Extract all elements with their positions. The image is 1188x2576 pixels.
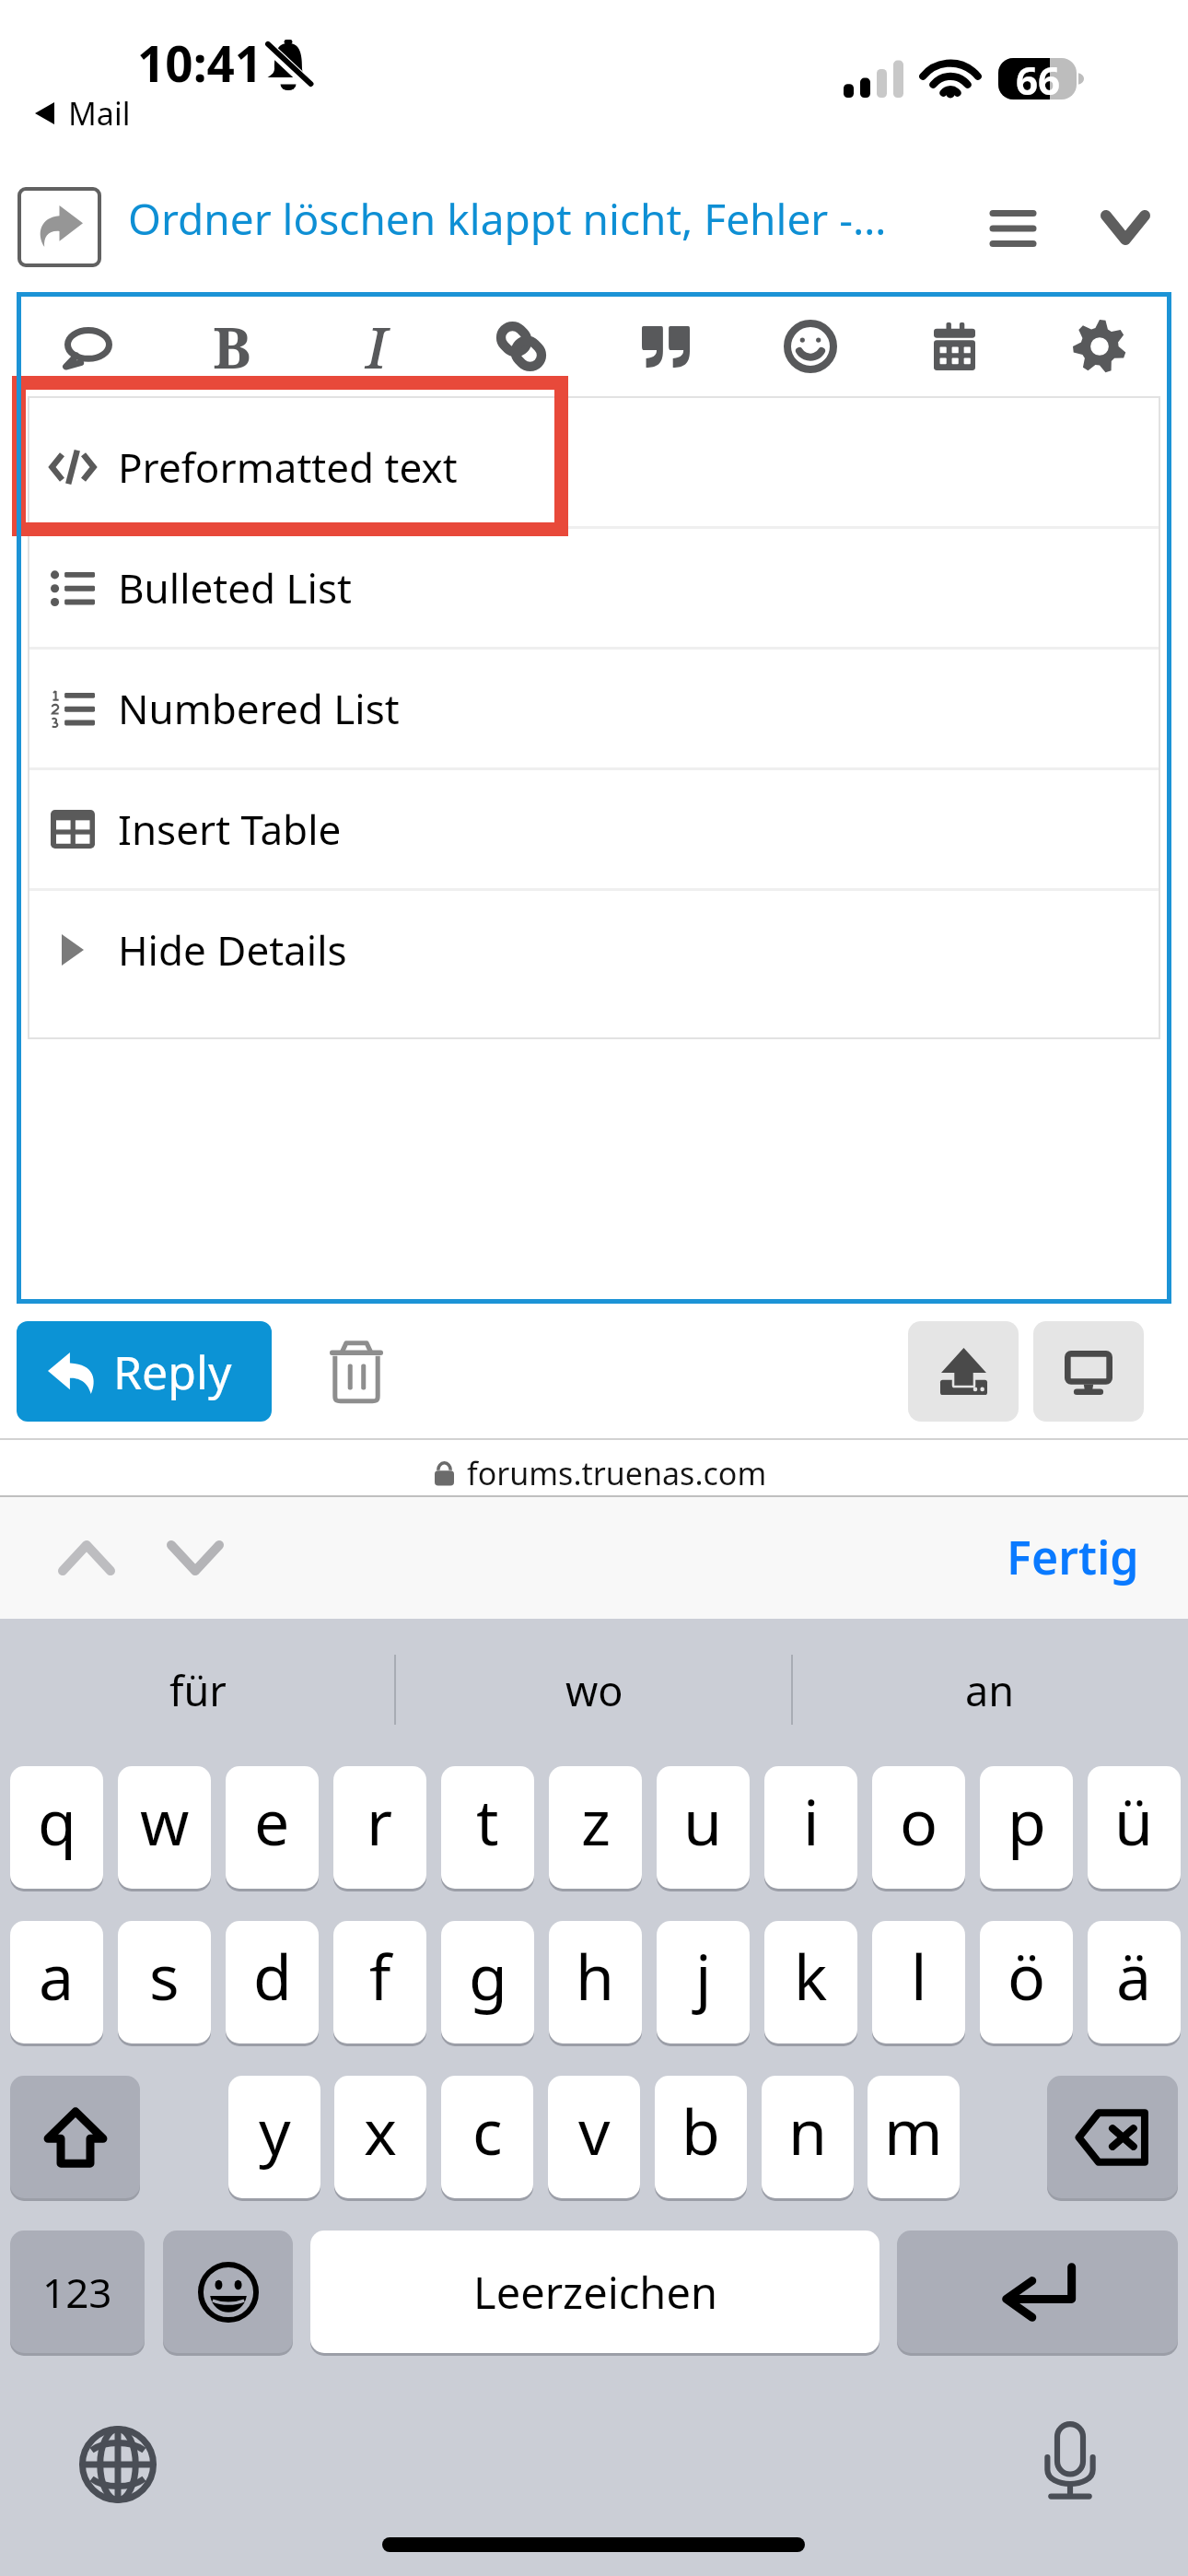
button[interactable]: c (441, 2076, 533, 2198)
button[interactable]: quote (593, 297, 738, 396)
button[interactable]: n (762, 2076, 854, 2198)
staticText: 10:41 (137, 29, 263, 96)
button[interactable]: f (333, 1921, 426, 2043)
staticText: Insert Table (118, 802, 342, 857)
button[interactable]: h (549, 1921, 642, 2043)
staticText: I (366, 308, 388, 385)
staticText: i (803, 1778, 820, 1864)
button[interactable]: Menu (971, 186, 1055, 271)
button[interactable]: Insert Table (28, 770, 1160, 888)
button[interactable]: forums.truenas.com (435, 1452, 767, 1494)
staticText: u (683, 1778, 723, 1864)
staticText: wo (565, 1662, 623, 1718)
staticText: e (254, 1778, 290, 1864)
button[interactable]: Bulleted List (28, 529, 1160, 647)
button[interactable]: b (655, 2076, 747, 2198)
button[interactable]: g (441, 1921, 534, 2043)
staticText: Leerzeichen (473, 2263, 717, 2322)
staticText: B (213, 308, 251, 385)
button[interactable]: Reply (17, 1321, 272, 1422)
staticText: m (884, 2088, 943, 2173)
staticText: k (794, 1933, 828, 2019)
button[interactable]: Next field (153, 1521, 238, 1595)
staticText: g (469, 1933, 507, 2019)
staticText: Preformatted text (118, 439, 458, 495)
staticText: 123 (42, 2265, 112, 2320)
button[interactable]: backspace (1047, 2076, 1178, 2198)
button[interactable]: emoji (163, 2231, 293, 2353)
button[interactable]: ü (1088, 1766, 1181, 1889)
button[interactable]: smiley (738, 297, 882, 396)
button[interactable]: Forward (17, 187, 101, 267)
button[interactable]: für (0, 1653, 396, 1727)
button[interactable]: i (764, 1766, 857, 1889)
button[interactable]: d (226, 1921, 319, 2043)
staticText: b (681, 2088, 720, 2173)
button[interactable]: calendar (882, 297, 1027, 396)
button[interactable]: e (226, 1766, 319, 1889)
staticText: n (788, 2088, 828, 2173)
staticText: p (1007, 1778, 1046, 1864)
button[interactable]: l (872, 1921, 965, 2043)
staticText: Mail (68, 92, 131, 135)
button[interactable]: Fertig (1007, 1516, 1139, 1598)
button[interactable]: shift (10, 2076, 140, 2198)
staticText: w (140, 1778, 190, 1864)
staticText: z (581, 1778, 611, 1864)
staticText: l (911, 1933, 927, 2019)
button[interactable]: j (657, 1921, 750, 2043)
staticText: r (367, 1778, 393, 1864)
button[interactable]: ö (980, 1921, 1073, 2043)
button[interactable]: Dictation (1024, 2414, 1116, 2506)
button[interactable]: Numbered List (28, 650, 1160, 767)
button[interactable]: Leerzeichen (310, 2231, 879, 2353)
button[interactable]: q (10, 1766, 103, 1889)
button[interactable]: Expand (1083, 185, 1168, 270)
button[interactable]: u (657, 1766, 750, 1889)
button[interactable]: Change keyboard (72, 2418, 164, 2511)
staticText: ü (1114, 1778, 1154, 1864)
button[interactable]: m (868, 2076, 960, 2198)
staticText: Hide Details (118, 922, 347, 978)
button[interactable]: bold (160, 297, 304, 396)
staticText: d (253, 1933, 292, 2019)
button[interactable]: Previous field (44, 1521, 129, 1595)
button[interactable]: k (764, 1921, 857, 2043)
button[interactable]: Preview (1033, 1321, 1144, 1422)
button[interactable]: s (118, 1921, 211, 2043)
staticText: Reply (113, 1341, 232, 1403)
button[interactable]: speech (17, 297, 160, 396)
staticText: Fertig (1007, 1526, 1139, 1588)
button[interactable]: link (448, 297, 593, 396)
staticText: h (576, 1933, 615, 2019)
button[interactable]: Hide Details (28, 891, 1160, 1009)
button[interactable]: v (548, 2076, 640, 2198)
button[interactable]: an (792, 1653, 1188, 1727)
staticText: c (472, 2088, 503, 2173)
button[interactable]: 123 (10, 2231, 145, 2353)
button[interactable]: t (441, 1766, 534, 1889)
button[interactable]: wo (396, 1653, 792, 1727)
button[interactable]: return (897, 2231, 1178, 2353)
button[interactable]: Mail (35, 92, 131, 135)
button[interactable]: y (228, 2076, 320, 2198)
button[interactable]: italic (304, 297, 448, 396)
staticText: 66 (1016, 53, 1061, 95)
button[interactable]: x (334, 2076, 426, 2198)
button[interactable]: z (549, 1766, 642, 1889)
staticText: j (695, 1933, 712, 2019)
button[interactable]: r (333, 1766, 426, 1889)
button[interactable]: ä (1088, 1921, 1181, 2043)
button[interactable]: w (118, 1766, 211, 1889)
staticText: an (965, 1662, 1015, 1718)
button[interactable]: gear (1027, 297, 1171, 396)
button[interactable]: o (872, 1766, 965, 1889)
button[interactable]: p (980, 1766, 1073, 1889)
button[interactable]: a (10, 1921, 103, 2043)
button[interactable]: Upload (908, 1321, 1019, 1422)
staticText: Numbered List (118, 681, 400, 736)
button[interactable]: Preformatted text (28, 408, 1160, 526)
button[interactable]: Delete (314, 1330, 399, 1411)
staticText: x (364, 2088, 397, 2173)
staticText: Bulleted List (118, 560, 352, 615)
